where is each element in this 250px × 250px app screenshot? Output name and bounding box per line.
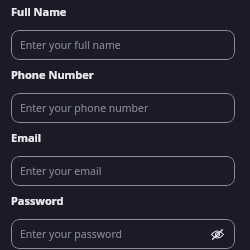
staticText: Email xyxy=(11,130,42,145)
staticText: Full Name xyxy=(11,4,67,19)
staticText: Enter your phone number xyxy=(20,101,149,115)
staticText: Enter your full name xyxy=(20,38,121,52)
staticText: Enter your email xyxy=(20,164,102,178)
staticText: Phone Number xyxy=(11,67,94,82)
button[interactable]: Enter your full name xyxy=(11,30,235,60)
button[interactable]: Enter your phone number xyxy=(11,93,235,123)
button[interactable]: Enter your email xyxy=(11,156,235,186)
staticText: Password xyxy=(11,193,64,208)
button[interactable]: Toggle password visibility xyxy=(208,225,226,243)
staticText: Enter your password xyxy=(20,227,122,241)
button[interactable]: Enter your password xyxy=(11,219,235,249)
